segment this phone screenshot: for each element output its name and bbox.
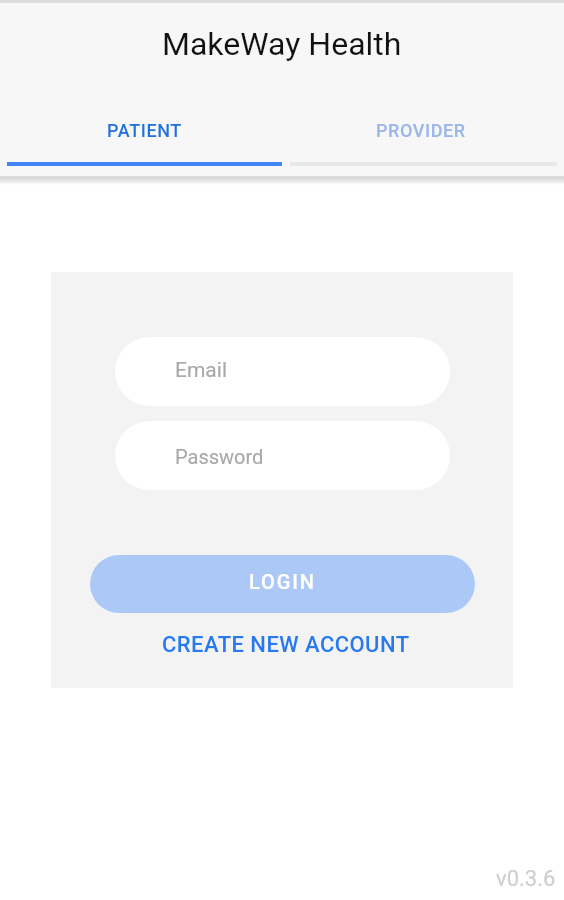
staticText: PATIENT: [107, 120, 182, 141]
staticText: LOGIN: [249, 570, 316, 593]
staticText: MakeWay Health: [162, 25, 402, 63]
button[interactable]: LOGIN: [90, 555, 475, 613]
staticText: PROVIDER: [376, 120, 466, 141]
button[interactable]: CREATE NEW ACCOUNT: [51, 622, 513, 667]
button[interactable]: PATIENT: [0, 95, 282, 165]
staticText: Email: [175, 358, 227, 383]
staticText: CREATE NEW ACCOUNT: [162, 632, 410, 658]
button[interactable]: Email: [115, 337, 450, 406]
staticText: v0.3.6: [496, 866, 556, 892]
staticText: Password: [175, 445, 264, 468]
button[interactable]: Password: [115, 421, 450, 490]
button[interactable]: PROVIDER: [282, 95, 564, 165]
